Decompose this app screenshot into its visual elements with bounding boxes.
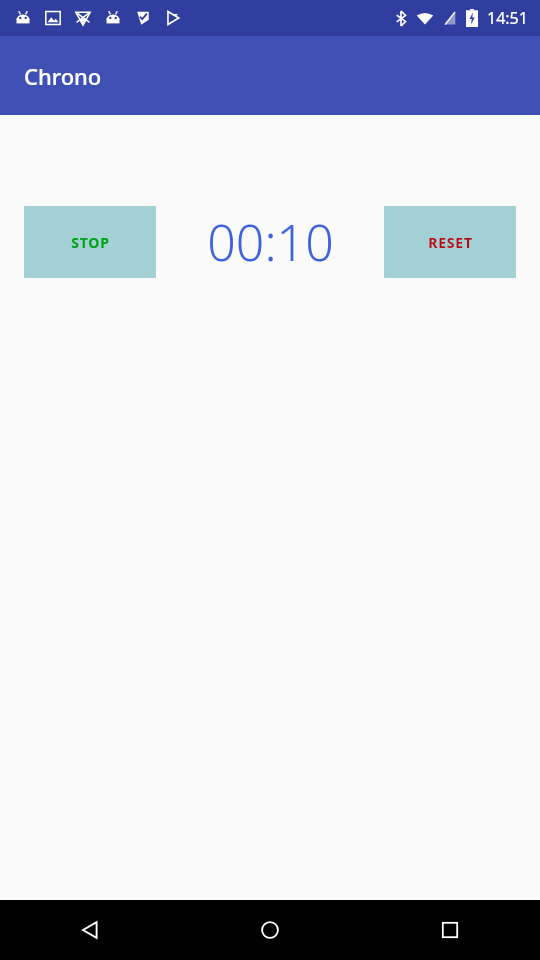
staticText: 14:51 <box>487 7 528 29</box>
button[interactable]: Recents <box>360 900 540 960</box>
button[interactable]: Home <box>180 900 360 960</box>
staticText: RESET <box>428 233 473 252</box>
button[interactable]: Back <box>0 900 180 960</box>
staticText: 00:10 <box>207 208 334 276</box>
button[interactable]: RESET <box>384 206 516 278</box>
staticText: Chrono <box>24 61 102 91</box>
staticText: STOP <box>71 233 110 252</box>
button[interactable]: STOP <box>24 206 156 278</box>
